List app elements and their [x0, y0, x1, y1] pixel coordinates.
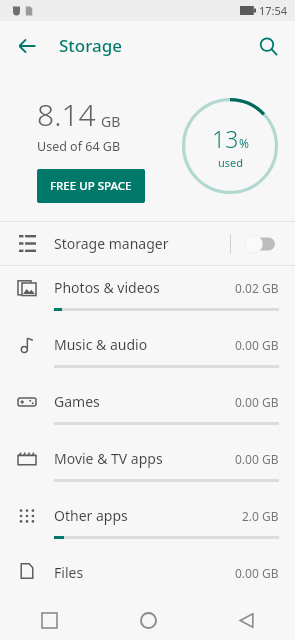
staticText: 0.00 GB [235, 451, 279, 467]
staticText: Files [54, 563, 235, 582]
button[interactable]: Games [0, 380, 295, 437]
staticText: Movie & TV apps [54, 449, 235, 468]
staticText: 0.00 GB [235, 565, 279, 581]
button[interactable]: Movie & TV apps [0, 437, 295, 494]
staticText: 17:54 [259, 3, 288, 18]
staticText: Photos & videos [54, 278, 235, 297]
staticText: 2.0 GB [242, 508, 279, 524]
staticText: Used of 64 GB [37, 138, 121, 155]
button[interactable]: Back [197, 601, 295, 640]
staticText: 8.14 [37, 94, 96, 135]
staticText: 0.00 GB [235, 337, 279, 353]
button[interactable]: Storage manager toggle [245, 231, 279, 257]
staticText: Other apps [54, 506, 242, 525]
button[interactable]: Files [0, 551, 295, 591]
button[interactable]: Recent apps [0, 601, 99, 640]
button[interactable]: Other apps [0, 494, 295, 551]
staticText: % [239, 135, 249, 151]
staticText: Storage [59, 34, 123, 57]
staticText: Games [54, 392, 235, 411]
button[interactable]: Photos & videos [0, 266, 295, 323]
staticText: FREE UP SPACE [50, 178, 132, 194]
staticText: GB [101, 112, 121, 131]
button[interactable]: Search [247, 25, 289, 67]
button[interactable]: Music & audio [0, 323, 295, 380]
button[interactable]: FREE UP SPACE [37, 169, 145, 203]
staticText: Music & audio [54, 335, 235, 354]
staticText: 0.02 GB [235, 280, 279, 296]
button[interactable]: Storage manager [0, 222, 295, 265]
staticText: 13 [212, 123, 239, 154]
button[interactable]: Home [99, 601, 197, 640]
staticText: used [218, 155, 244, 170]
staticText: 0.00 GB [235, 394, 279, 410]
button[interactable]: Back [6, 25, 48, 67]
staticText: Storage manager [54, 234, 230, 253]
